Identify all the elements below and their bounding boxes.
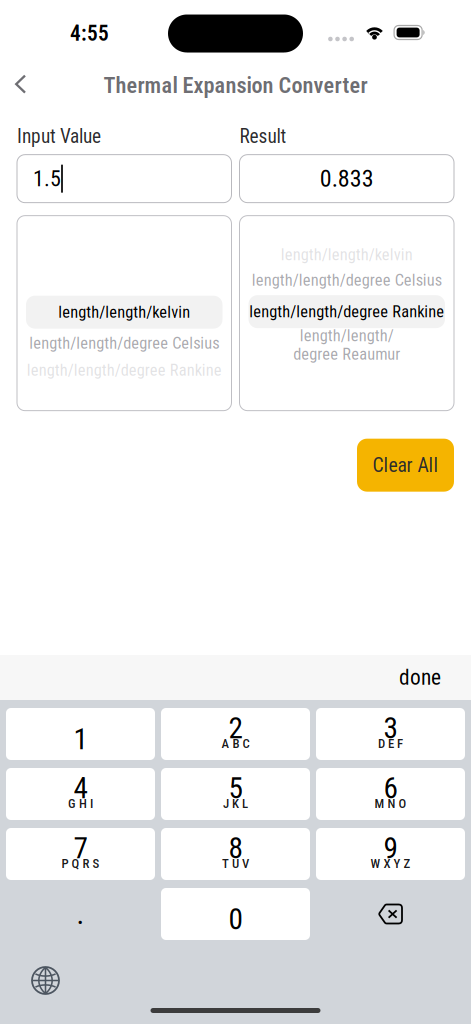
- staticText: length/length/degree Rankine: [27, 360, 222, 380]
- button[interactable]: Next keyboard: [14, 946, 77, 1006]
- button[interactable]: 7: [6, 828, 155, 880]
- button[interactable]: 1: [6, 708, 155, 760]
- staticText: 9: [383, 831, 397, 865]
- staticText: length/length/degree Celsius: [29, 333, 219, 353]
- staticText: W X Y Z: [370, 856, 410, 871]
- staticText: length/length/degree Celsius: [252, 270, 442, 290]
- staticText: T U V: [222, 856, 249, 871]
- button[interactable]: length/length/degree Celsius: [17, 329, 231, 358]
- staticText: length/length/degree Rankine: [249, 302, 444, 321]
- staticText: 7: [73, 831, 87, 865]
- staticText: D E F: [378, 736, 403, 751]
- button[interactable]: 5: [161, 768, 310, 820]
- button[interactable]: length/length/degree Rankine: [17, 358, 231, 383]
- button[interactable]: 9: [316, 828, 465, 880]
- staticText: M N O: [374, 796, 406, 811]
- button[interactable]: 0: [161, 888, 310, 940]
- staticText: 1: [73, 722, 87, 756]
- staticText: 6: [383, 771, 397, 805]
- staticText: 2: [228, 711, 242, 745]
- staticText: 0: [228, 902, 242, 936]
- staticText: Input Value: [17, 125, 101, 148]
- staticText: 1.5: [33, 166, 61, 192]
- staticText: .: [76, 897, 84, 931]
- staticText: 0.833: [320, 165, 374, 193]
- staticText: 3: [383, 711, 397, 745]
- button[interactable]: length/length/: [239, 329, 454, 343]
- button[interactable]: 8: [161, 828, 310, 880]
- staticText: J K L: [223, 796, 248, 811]
- button[interactable]: 3: [316, 708, 465, 760]
- button[interactable]: length/length/degree Celsius: [239, 266, 454, 295]
- staticText: Result: [239, 125, 286, 148]
- button[interactable]: Clear All: [357, 439, 454, 492]
- staticText: Clear All: [372, 454, 438, 477]
- staticText: length/length/kelvin: [281, 245, 413, 264]
- staticText: 5: [228, 771, 242, 805]
- button[interactable]: 6: [316, 768, 465, 820]
- staticText: done: [399, 665, 441, 690]
- staticText: A B C: [221, 736, 249, 751]
- button[interactable]: length/length/kelvin: [239, 244, 454, 266]
- staticText: length/length/: [300, 326, 394, 345]
- staticText: 4:55: [70, 21, 109, 46]
- button[interactable]: length/length/kelvin: [17, 296, 231, 329]
- staticText: degree Reaumur: [293, 344, 400, 364]
- staticText: 8: [228, 831, 242, 865]
- button[interactable]: 1.5: [17, 155, 231, 203]
- button[interactable]: 2: [161, 708, 310, 760]
- button[interactable]: .: [6, 888, 155, 940]
- staticText: P Q R S: [61, 856, 99, 871]
- button[interactable]: done: [385, 654, 455, 701]
- button[interactable]: degree Reaumur: [239, 343, 454, 366]
- staticText: 4: [73, 771, 87, 805]
- staticText: length/length/kelvin: [58, 302, 190, 322]
- button[interactable]: length/length/degree Rankine: [239, 295, 454, 329]
- staticText: G H I: [68, 796, 93, 811]
- button[interactable]: Delete: [316, 888, 465, 940]
- button[interactable]: 4: [6, 768, 155, 820]
- button[interactable]: Back: [0, 55, 41, 104]
- staticText: Thermal Expansion Converter: [103, 72, 367, 99]
